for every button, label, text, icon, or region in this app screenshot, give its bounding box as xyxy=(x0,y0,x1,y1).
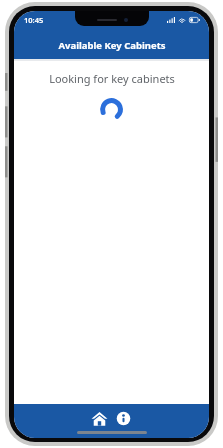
staticText: Available Key Cabinets xyxy=(58,39,166,52)
staticText: Looking for key cabinets xyxy=(49,71,175,86)
staticText: 10:45 xyxy=(24,15,44,25)
button[interactable]: Info xyxy=(115,410,132,427)
button[interactable]: Home xyxy=(91,410,108,427)
